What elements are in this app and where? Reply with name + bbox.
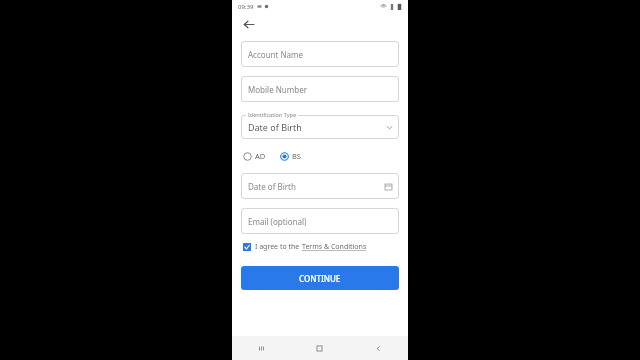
button[interactable]: Back: [349, 336, 408, 360]
button[interactable]: I agree to the: [243, 240, 408, 254]
staticText: Date of Birth: [248, 181, 296, 192]
staticText: Email (optional): [248, 216, 307, 227]
button[interactable]: Date of Birth: [241, 115, 399, 139]
staticText: CONTINUE: [299, 273, 341, 284]
button[interactable]: Email (optional): [241, 208, 399, 234]
staticText: Terms & Conditions: [302, 242, 367, 252]
staticText: I agree to the: [255, 242, 302, 252]
button[interactable]: Account Name: [241, 41, 399, 67]
staticText: 09:39: [238, 3, 254, 11]
button[interactable]: BS: [278, 151, 303, 161]
staticText: Identification Type: [248, 111, 296, 118]
staticText: AD: [255, 151, 266, 161]
staticText: BS: [292, 151, 301, 161]
button[interactable]: Home: [290, 336, 349, 360]
staticText: Mobile Number: [248, 84, 307, 95]
button[interactable]: Recents: [232, 336, 290, 360]
button[interactable]: Date of Birth: [241, 173, 399, 199]
button[interactable]: Back: [237, 13, 259, 35]
staticText: Account Name: [248, 49, 304, 60]
button[interactable]: CONTINUE: [241, 266, 399, 290]
button[interactable]: AD: [241, 151, 268, 161]
button[interactable]: Mobile Number: [241, 76, 399, 102]
staticText: Date of Birth: [248, 121, 302, 133]
